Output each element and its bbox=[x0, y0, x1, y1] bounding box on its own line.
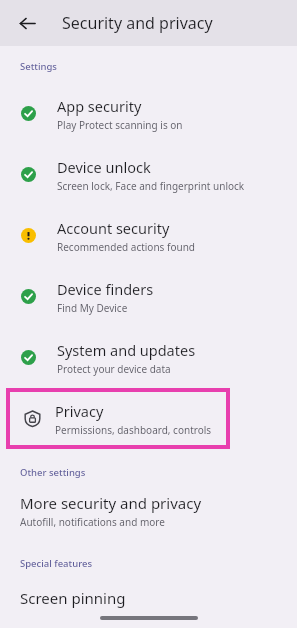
staticText: Account security bbox=[57, 218, 170, 238]
button[interactable]: System and updates bbox=[0, 327, 297, 388]
button[interactable]: Back bbox=[10, 6, 44, 40]
staticText: Screen pinning bbox=[20, 588, 126, 608]
button[interactable]: Privacy bbox=[10, 392, 226, 445]
button[interactable]: Device finders bbox=[0, 266, 297, 327]
button[interactable]: More security and privacy bbox=[0, 493, 297, 529]
staticText: Recommended actions found bbox=[57, 240, 195, 254]
staticText: App security bbox=[57, 96, 142, 116]
staticText: Settings bbox=[20, 60, 57, 73]
staticText: System and updates bbox=[57, 340, 196, 360]
staticText: Protect your device data bbox=[57, 362, 171, 376]
staticText: Privacy bbox=[55, 401, 104, 421]
staticText: Screen lock, Face and fingerprint unlock bbox=[57, 179, 245, 193]
staticText: Device finders bbox=[57, 279, 154, 299]
staticText: Other settings bbox=[20, 466, 86, 479]
button[interactable]: App security bbox=[0, 83, 297, 144]
button[interactable]: Device unlock bbox=[0, 144, 297, 205]
staticText: Autofill, notifications and more bbox=[20, 515, 165, 529]
staticText: Permissions, dashboard, controls bbox=[55, 423, 212, 437]
staticText: More security and privacy bbox=[20, 493, 202, 513]
staticText: Play Protect scanning is on bbox=[57, 118, 183, 132]
staticText: Device unlock bbox=[57, 157, 151, 177]
staticText: Find My Device bbox=[57, 301, 128, 315]
staticText: Special features bbox=[20, 557, 93, 570]
staticText: Security and privacy bbox=[62, 12, 213, 34]
button[interactable]: Account security bbox=[0, 205, 297, 266]
